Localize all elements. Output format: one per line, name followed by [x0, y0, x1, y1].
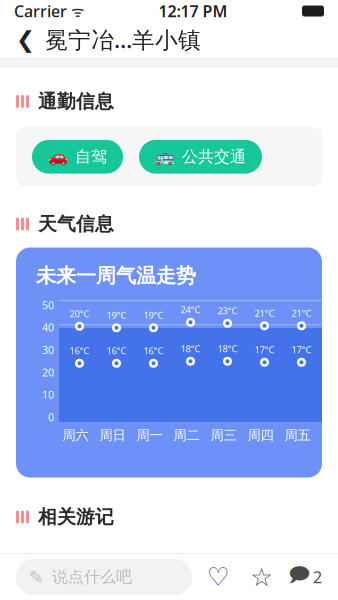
staticText: 周四 [247, 427, 273, 443]
staticText: ☆ [250, 563, 273, 591]
staticText: 🗩 [288, 560, 310, 593]
button[interactable]: ✎ [16, 559, 192, 595]
staticText: 相关游记 [38, 505, 114, 528]
button[interactable]: 🚗 [32, 140, 123, 174]
staticText: 18°C [217, 342, 237, 355]
staticText: 10 [42, 388, 54, 402]
staticText: 0 [48, 410, 54, 424]
staticText: 🚗 [48, 148, 68, 166]
staticText: 18°C [180, 342, 200, 355]
staticText: 16°C [106, 344, 126, 357]
staticText: 未来一周气温走势 [36, 263, 196, 288]
staticText: 21°C [254, 307, 274, 319]
staticText: 公共交通 [182, 147, 246, 167]
staticText: 20°C [69, 307, 89, 320]
staticText: 通勤信息 [38, 90, 114, 113]
staticText: 12:17 PM [158, 0, 227, 22]
staticText: 19°C [106, 309, 126, 321]
staticText: 20 [42, 365, 54, 379]
staticText: 17°C [254, 343, 274, 356]
button[interactable]: 🚌 [139, 140, 262, 174]
staticText: ᯤ [67, 1, 84, 21]
staticText: 16°C [69, 344, 89, 357]
staticText: 24°C [180, 303, 200, 316]
staticText: 40 [42, 320, 54, 335]
staticText: 21°C [291, 307, 311, 319]
button[interactable]: Like [201, 560, 235, 594]
staticText: 🚌 [155, 148, 175, 166]
button[interactable]: Back [0, 16, 217, 62]
button[interactable]: Favorite [245, 560, 279, 594]
staticText: ♡ [207, 563, 230, 591]
staticText: ❮ [16, 27, 35, 52]
staticText: 共2条评论 [20, 550, 93, 572]
staticText: 2 [313, 566, 322, 588]
staticText: 16°C [143, 344, 163, 357]
staticText: 周五 [284, 427, 310, 443]
staticText: 50 [42, 298, 54, 312]
staticText: 周一 [136, 427, 162, 443]
staticText: ✎ [29, 567, 44, 587]
staticText: 30 [42, 343, 54, 357]
staticText: 说点什么吧 [52, 567, 132, 587]
staticText: 23°C [217, 304, 237, 317]
staticText: 19°C [143, 309, 163, 321]
staticText: Carrier [14, 0, 67, 22]
staticText: 自驾 [75, 147, 107, 167]
staticText: 周三 [210, 427, 236, 443]
staticText: 天气信息 [38, 213, 114, 235]
staticText: 冕宁冶…羊小镇 [45, 24, 201, 54]
staticText: 周六 [62, 427, 88, 443]
staticText: 周二 [173, 427, 199, 443]
button[interactable]: Comments [288, 560, 322, 594]
staticText: 17°C [291, 343, 311, 356]
staticText: 周日 [99, 427, 125, 443]
